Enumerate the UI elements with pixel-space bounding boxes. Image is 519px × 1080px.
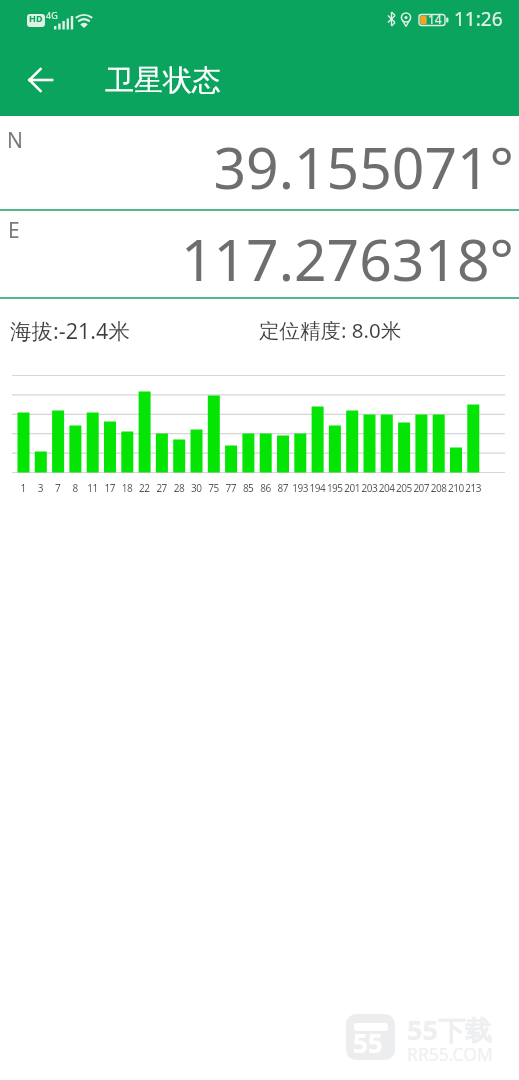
staticText: 55下载: [407, 1011, 492, 1048]
staticText: 卫星状态: [105, 62, 221, 99]
staticText: 海拔:-21.4米: [10, 316, 130, 345]
staticText: 11:26: [454, 6, 503, 32]
staticText: 55: [353, 1025, 383, 1060]
staticText: 14: [428, 11, 442, 27]
staticText: 4G: [46, 9, 58, 21]
staticText: N: [7, 126, 23, 155]
staticText: 39.155071°: [0, 128, 514, 206]
button[interactable]: [17, 56, 65, 104]
staticText: HD: [29, 12, 43, 24]
staticText: 定位精度: 8.0米: [259, 316, 402, 344]
staticText: 117.276318°: [0, 220, 514, 298]
staticText: RR55.COM: [407, 1042, 493, 1066]
staticText: E: [8, 216, 20, 245]
